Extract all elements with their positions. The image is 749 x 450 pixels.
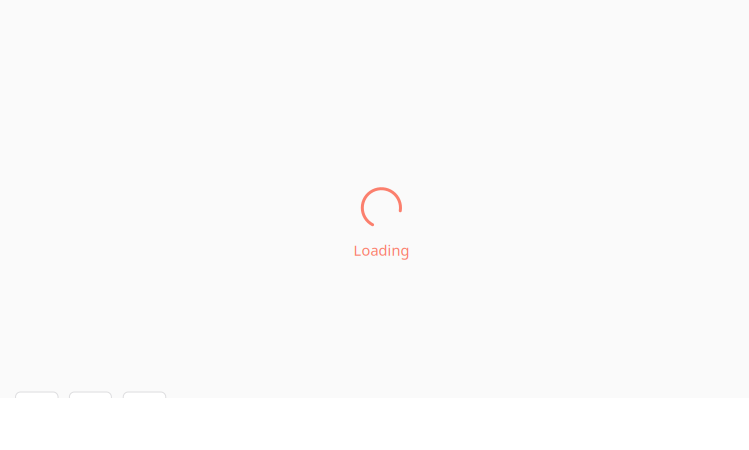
staticText: Loading: [353, 240, 409, 260]
button[interactable]: All: [15, 392, 58, 414]
button[interactable]: Saved: [123, 392, 166, 414]
button[interactable]: Unread: [69, 392, 111, 414]
